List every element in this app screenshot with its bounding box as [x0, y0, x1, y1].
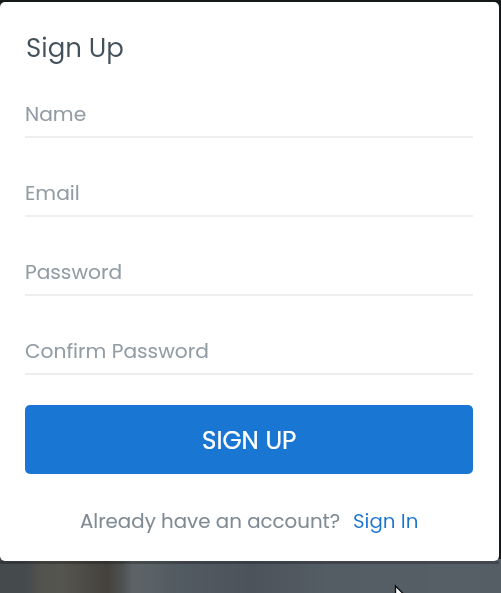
staticText: Already have an account?: [80, 507, 341, 535]
staticText: Email: [25, 179, 80, 207]
staticText: Sign In: [353, 507, 419, 535]
staticText: Confirm Password: [25, 337, 209, 365]
button[interactable]: SIGN UP: [25, 405, 473, 474]
staticText: SIGN UP: [202, 423, 297, 457]
staticText: Password: [25, 258, 123, 286]
staticText: Sign Up: [26, 30, 124, 66]
staticText: Name: [25, 100, 87, 128]
button[interactable]: Sign In: [353, 507, 419, 535]
